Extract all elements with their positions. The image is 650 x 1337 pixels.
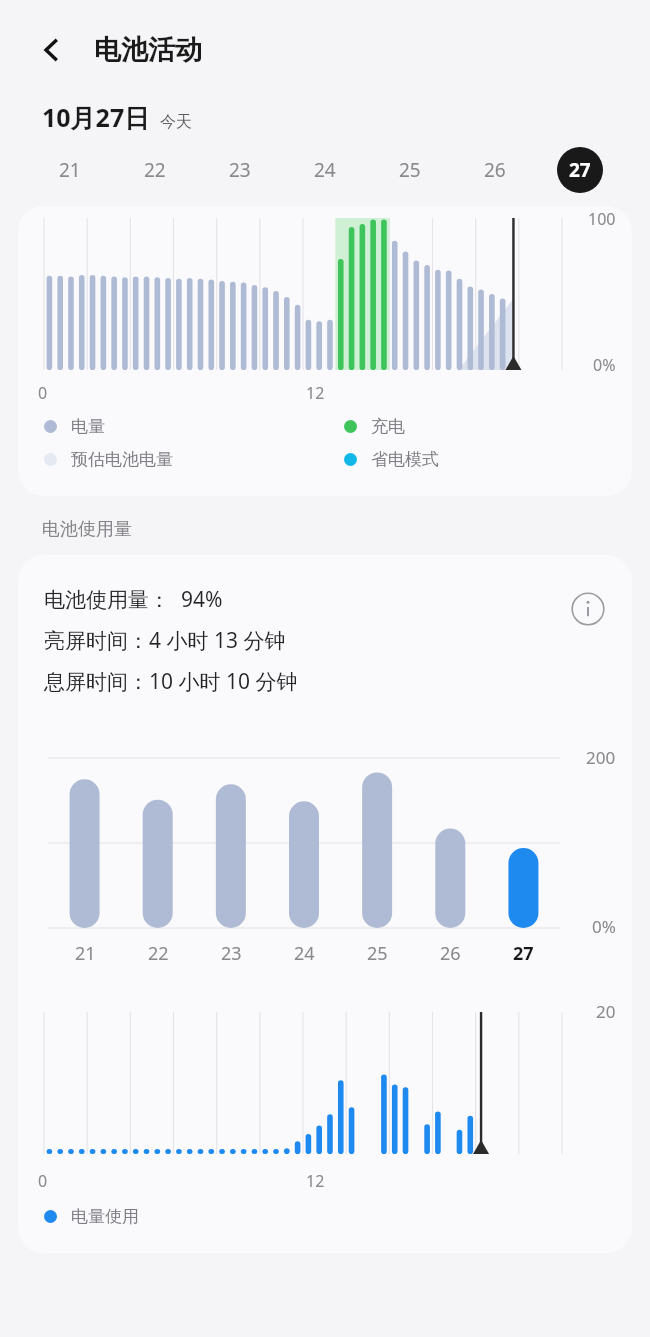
button[interactable]: 24 [282, 141, 367, 199]
staticText: 0 [38, 382, 48, 404]
staticText: 电池使用量 [42, 518, 132, 541]
staticText: 26 [484, 157, 506, 183]
staticText: 20 [596, 1000, 616, 1023]
button[interactable]: 22 [112, 141, 197, 199]
staticText: 亮屏时间：4 小时 13 分钟 [44, 626, 286, 655]
staticText: 24 [294, 941, 315, 966]
staticText: 充电 [371, 416, 405, 437]
staticText: 100 [588, 208, 616, 230]
staticText: 21 [59, 157, 81, 183]
button[interactable]: 25 [367, 141, 452, 199]
staticText: 23 [221, 941, 242, 966]
staticText: 26 [440, 941, 461, 966]
staticText: 22 [148, 941, 169, 966]
button[interactable]: 信息 [566, 587, 610, 631]
staticText: 0% [593, 354, 616, 376]
staticText: 0% [592, 915, 616, 938]
staticText: 23 [229, 157, 251, 183]
staticText: 12 [306, 1170, 325, 1192]
staticText: 0 [38, 1170, 48, 1192]
staticText: 27 [569, 157, 591, 183]
staticText: 电池使用量： 94% [44, 585, 223, 614]
button[interactable]: 21 [28, 141, 112, 199]
staticText: 今天 [160, 112, 192, 132]
staticText: 12 [306, 382, 325, 404]
staticText: 25 [367, 941, 388, 966]
button[interactable]: 26 [452, 141, 537, 199]
staticText: 22 [144, 157, 166, 183]
staticText: 预估电池电量 [71, 449, 173, 470]
button[interactable]: 23 [197, 141, 282, 199]
staticText: 10月27日 [42, 100, 150, 134]
staticText: 电量 [71, 416, 105, 437]
staticText: 24 [314, 157, 336, 183]
staticText: 25 [399, 157, 421, 183]
button[interactable]: 27 [537, 141, 622, 199]
staticText: 省电模式 [371, 449, 439, 470]
staticText: 27 [513, 941, 534, 966]
button[interactable]: 返回 [26, 24, 78, 76]
staticText: 电池活动 [94, 33, 202, 67]
staticText: 息屏时间：10 小时 10 分钟 [44, 667, 298, 696]
staticText: 21 [75, 941, 96, 966]
staticText: 200 [586, 746, 616, 769]
staticText: 电量使用 [71, 1206, 139, 1227]
